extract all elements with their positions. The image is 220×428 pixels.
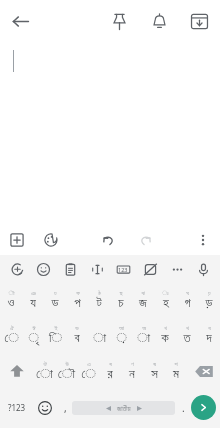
staticText: ফ [76, 290, 80, 296]
staticText: ড় [205, 297, 213, 310]
staticText: ম [173, 368, 179, 381]
button[interactable]: Emoji keyboard [32, 395, 58, 421]
staticText: ঔ [43, 361, 47, 367]
staticText: দ [206, 332, 212, 345]
staticText: র [107, 368, 113, 381]
staticText: ঠ [98, 290, 101, 296]
staticText: অ [142, 325, 146, 331]
staticText: ঝ [141, 290, 145, 296]
button[interactable]: থ [176, 317, 198, 352]
button[interactable]: ঘ [176, 282, 198, 317]
staticText: গ [184, 297, 191, 310]
staticText: ঘ [186, 290, 189, 296]
staticText: জ [139, 297, 147, 310]
button[interactable]: ঞ [22, 282, 44, 317]
staticText: ঞ [31, 290, 36, 296]
button[interactable]: Undo [95, 227, 121, 253]
button[interactable]: Text editing [85, 257, 109, 281]
button[interactable]: ঈ [22, 317, 44, 352]
staticText: স [151, 368, 158, 381]
button[interactable]: আ [110, 317, 132, 352]
staticText: ৃ [28, 332, 39, 345]
staticText: ঈ [32, 325, 36, 331]
staticText: ৗ [8, 290, 15, 296]
staticText: ঐ [10, 325, 14, 331]
button[interactable]: া [88, 317, 110, 352]
staticText: ে [81, 368, 96, 381]
button[interactable]: . [175, 390, 191, 425]
button[interactable]: Voice input [191, 257, 215, 281]
staticText: ধ [208, 325, 211, 331]
button[interactable]: ?123 [2, 390, 32, 425]
staticText: ও [7, 297, 15, 310]
staticText: শ [174, 361, 178, 367]
button[interactable]: ভ [66, 317, 88, 352]
button[interactable]: ফ [66, 282, 88, 317]
staticText: ভ [75, 325, 79, 331]
staticText: ত [183, 332, 191, 345]
button[interactable]: এ [77, 352, 99, 390]
staticText: উ [65, 361, 69, 367]
button[interactable]: Add [4, 227, 30, 253]
staticText: হ [163, 297, 169, 310]
button[interactable]: Numbers [111, 257, 135, 281]
button[interactable]: ঃ [154, 282, 176, 317]
button[interactable]: Pin note [102, 4, 136, 38]
staticText: ় [116, 332, 127, 345]
button[interactable]: Emoji [31, 257, 55, 281]
button[interactable]: Shift [0, 352, 33, 390]
staticText: খ [164, 325, 167, 331]
button[interactable]: ষ [143, 352, 165, 390]
button[interactable]: ঝ [132, 282, 154, 317]
button[interactable]: ই [44, 317, 66, 352]
button[interactable]: ঔ [33, 352, 55, 390]
button[interactable]: Space [72, 401, 175, 415]
staticText: া [137, 332, 150, 345]
button[interactable]: More options [190, 227, 216, 253]
button[interactable]: উ [55, 352, 77, 390]
button[interactable]: ধ [198, 317, 220, 352]
staticText: ষ [153, 361, 156, 367]
button[interactable]: ঠ [88, 282, 110, 317]
staticText: য [30, 297, 36, 310]
button[interactable]: ছ [110, 282, 132, 317]
staticText: চ [118, 297, 124, 310]
staticText: ঢ় [208, 290, 211, 296]
staticText: ?123 [8, 402, 26, 413]
staticText: ট [96, 297, 102, 310]
button[interactable]: শ [165, 352, 187, 390]
button[interactable]: Change color [38, 227, 64, 253]
staticText: ৰ [109, 361, 112, 367]
staticText: ড [51, 297, 59, 310]
button[interactable]: ঐ [0, 317, 22, 352]
staticText: ে [4, 332, 19, 345]
button[interactable]: Redo [133, 227, 159, 253]
staticText: ক [161, 332, 169, 345]
button[interactable]: ৗ [0, 282, 22, 317]
button[interactable]: Backspace [187, 352, 220, 390]
staticText: ন [129, 368, 135, 381]
staticText: ঃ [162, 290, 169, 296]
button[interactable]: ৰ [99, 352, 121, 390]
button[interactable]: Reminder [142, 4, 176, 38]
button[interactable]: Navigate up [3, 4, 37, 38]
staticText: ঢ [54, 290, 57, 296]
staticText: ৌ [58, 368, 75, 381]
button[interactable]: খ [154, 317, 176, 352]
button[interactable]: , [58, 390, 72, 425]
staticText: ব [74, 332, 80, 345]
button[interactable]: ঢ় [198, 282, 220, 317]
button[interactable]: ণ [121, 352, 143, 390]
button[interactable]: Stickers off [138, 257, 162, 281]
button[interactable]: Archive [182, 4, 216, 38]
button[interactable]: Translate [5, 257, 29, 281]
button[interactable]: More keyboard options [165, 257, 189, 281]
staticText: ই [54, 325, 58, 331]
button[interactable]: ঢ [44, 282, 66, 317]
button[interactable]: Clipboard [58, 257, 82, 281]
button[interactable]: অ [132, 317, 154, 352]
staticText: প [74, 297, 81, 310]
button[interactable]: Enter [191, 395, 216, 420]
staticText: া [93, 332, 106, 345]
